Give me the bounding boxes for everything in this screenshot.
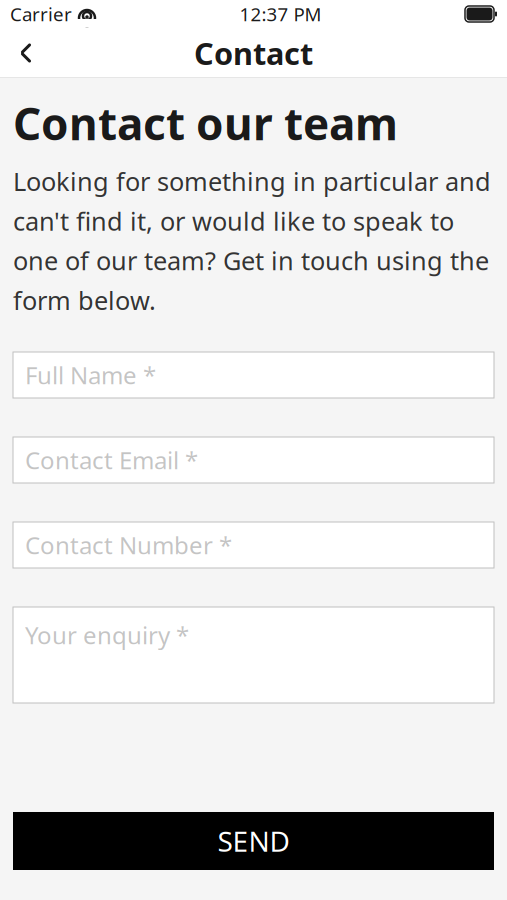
staticText: Carrier [10,2,72,26]
staticText: Contact [194,33,313,73]
button[interactable]: Contact Number * [13,522,494,568]
staticText: Contact Number * [25,529,232,561]
staticText: SEND [217,822,289,860]
button[interactable]: Full Name * [13,352,494,398]
staticText: Your enquiry * [25,619,189,651]
button[interactable]: Your enquiry * [13,607,494,703]
staticText: Looking for something in particular and … [13,164,491,317]
staticText: Contact Email * [25,444,198,476]
staticText: Full Name * [25,359,156,391]
button[interactable]: Back [0,28,52,78]
staticText: Contact our team [13,94,398,152]
staticText: 12:37 PM [239,2,321,26]
button[interactable]: Contact Email * [13,437,494,483]
button[interactable]: SEND [13,812,494,870]
